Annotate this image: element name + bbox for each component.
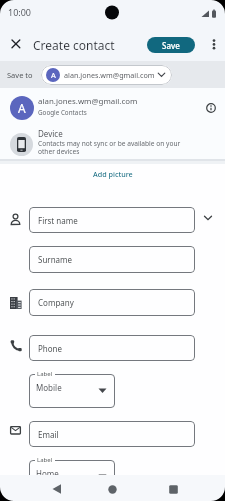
staticText: A <box>51 70 56 80</box>
button[interactable]: Surname <box>29 246 195 273</box>
button[interactable] <box>104 481 121 498</box>
button[interactable] <box>0 126 225 159</box>
button[interactable]: Add picture <box>85 166 140 181</box>
staticText: Label <box>37 370 53 378</box>
button[interactable] <box>200 210 218 228</box>
button[interactable]: A <box>41 65 172 85</box>
staticText: Save <box>162 40 180 51</box>
staticText: Surname <box>38 254 73 265</box>
button[interactable] <box>48 480 66 498</box>
staticText: other devices <box>38 147 80 156</box>
staticText: Mobile <box>36 382 62 393</box>
staticText: Create contact <box>33 37 115 53</box>
staticText: Email <box>38 429 59 440</box>
button[interactable]: Email <box>29 421 195 447</box>
staticText: Add picture <box>93 169 133 179</box>
button[interactable]: First name <box>29 207 195 233</box>
staticText: First name <box>38 215 78 226</box>
button[interactable]: Phone <box>29 335 195 361</box>
staticText: A <box>18 100 26 116</box>
button[interactable] <box>0 90 225 124</box>
staticText: 10:00 <box>8 6 32 18</box>
staticText: Save to <box>7 70 33 80</box>
button[interactable]: Label <box>29 456 115 489</box>
staticText: Phone <box>38 343 63 354</box>
staticText: Company <box>38 297 74 308</box>
button[interactable] <box>8 36 24 52</box>
button[interactable] <box>208 37 220 53</box>
button[interactable] <box>165 481 182 498</box>
staticText: alan.jones.wm@gmail.com <box>64 70 155 80</box>
button[interactable]: Save <box>147 37 195 53</box>
staticText: Contacts may not sync or be available on… <box>38 139 181 148</box>
staticText: Label <box>37 456 53 464</box>
button[interactable]: Label <box>29 370 115 407</box>
staticText: alan.jones.wm@gmail.com <box>38 96 138 107</box>
button[interactable]: Company <box>29 289 195 316</box>
staticText: Home <box>36 468 59 479</box>
staticText: Device <box>38 128 63 139</box>
staticText: Google Contacts <box>38 108 87 117</box>
